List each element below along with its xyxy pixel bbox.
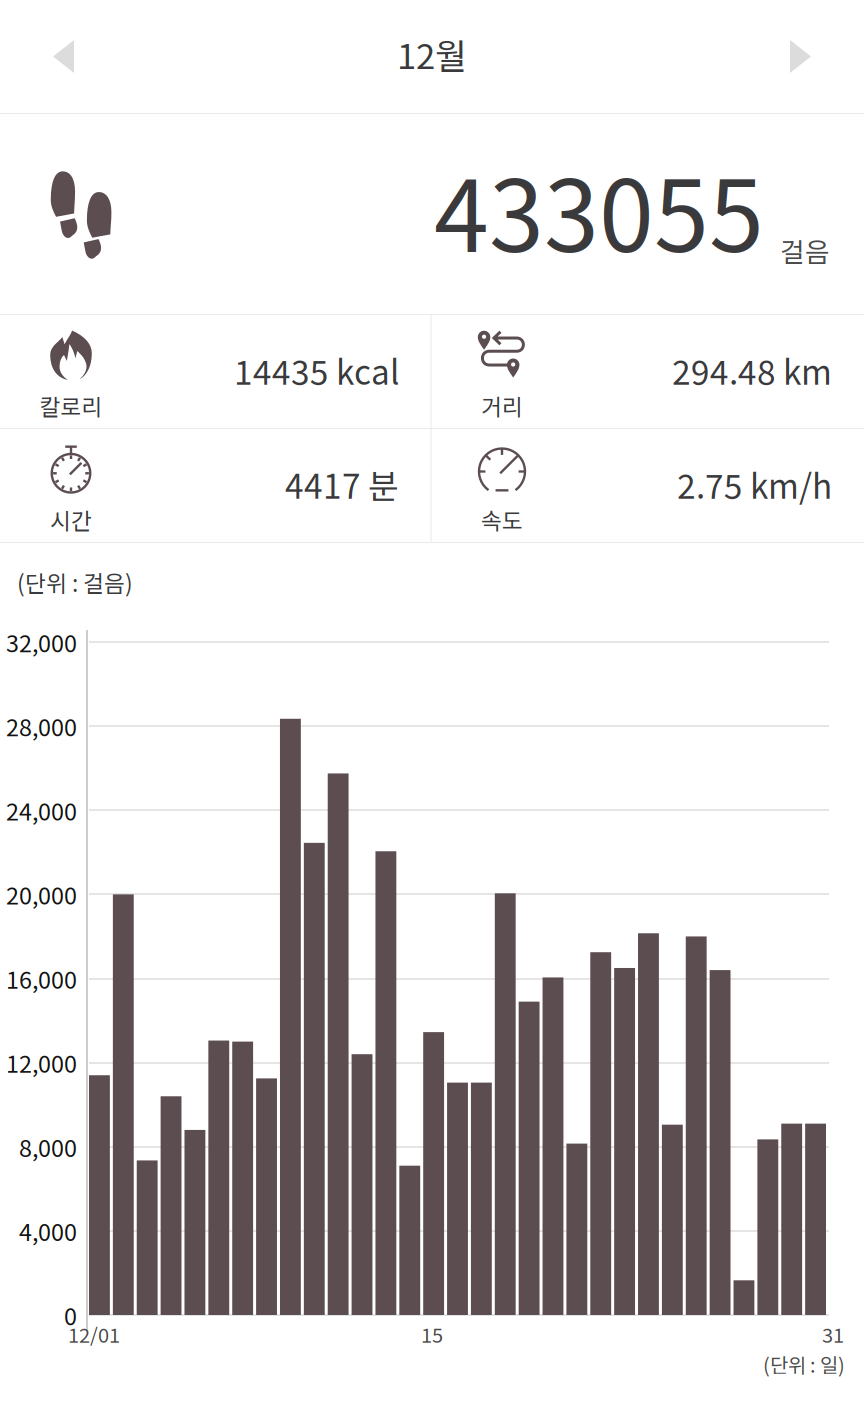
staticText: 0 (64, 1298, 77, 1332)
staticText: 4,000 (19, 1214, 77, 1248)
staticText: 28,000 (6, 709, 77, 743)
staticText: 12/01 (68, 1319, 120, 1348)
button[interactable]: 속도 (431, 429, 864, 542)
button[interactable]: 거리 (431, 315, 864, 428)
staticText: 294.48 km (672, 346, 832, 394)
button[interactable]: Previous month (0, 12, 108, 101)
staticText: 20,000 (6, 877, 77, 911)
staticText: 걸음 (780, 231, 830, 270)
button[interactable]: Next month (756, 12, 864, 101)
staticText: 16,000 (6, 962, 77, 995)
staticText: 거리 (481, 389, 523, 422)
staticText: 12월 (397, 29, 467, 79)
staticText: 4417 분 (285, 460, 399, 508)
staticText: 속도 (481, 503, 523, 536)
button[interactable]: 칼로리 (0, 315, 431, 428)
staticText: 12,000 (6, 1046, 77, 1079)
staticText: 24,000 (6, 793, 77, 827)
staticText: 433055 (434, 138, 764, 280)
staticText: 15 (421, 1319, 443, 1348)
staticText: 칼로리 (39, 389, 102, 422)
staticText: 2.75 km/h (677, 460, 832, 508)
staticText: (단위 : 걸음) (17, 566, 133, 598)
staticText: 8,000 (19, 1130, 77, 1164)
staticText: (단위 : 일) (763, 1349, 845, 1378)
staticText: 시간 (50, 503, 92, 536)
staticText: 14435 kcal (234, 346, 399, 394)
staticText: 32,000 (6, 625, 77, 659)
button[interactable]: 시간 (0, 429, 431, 542)
staticText: 31 (822, 1319, 844, 1348)
